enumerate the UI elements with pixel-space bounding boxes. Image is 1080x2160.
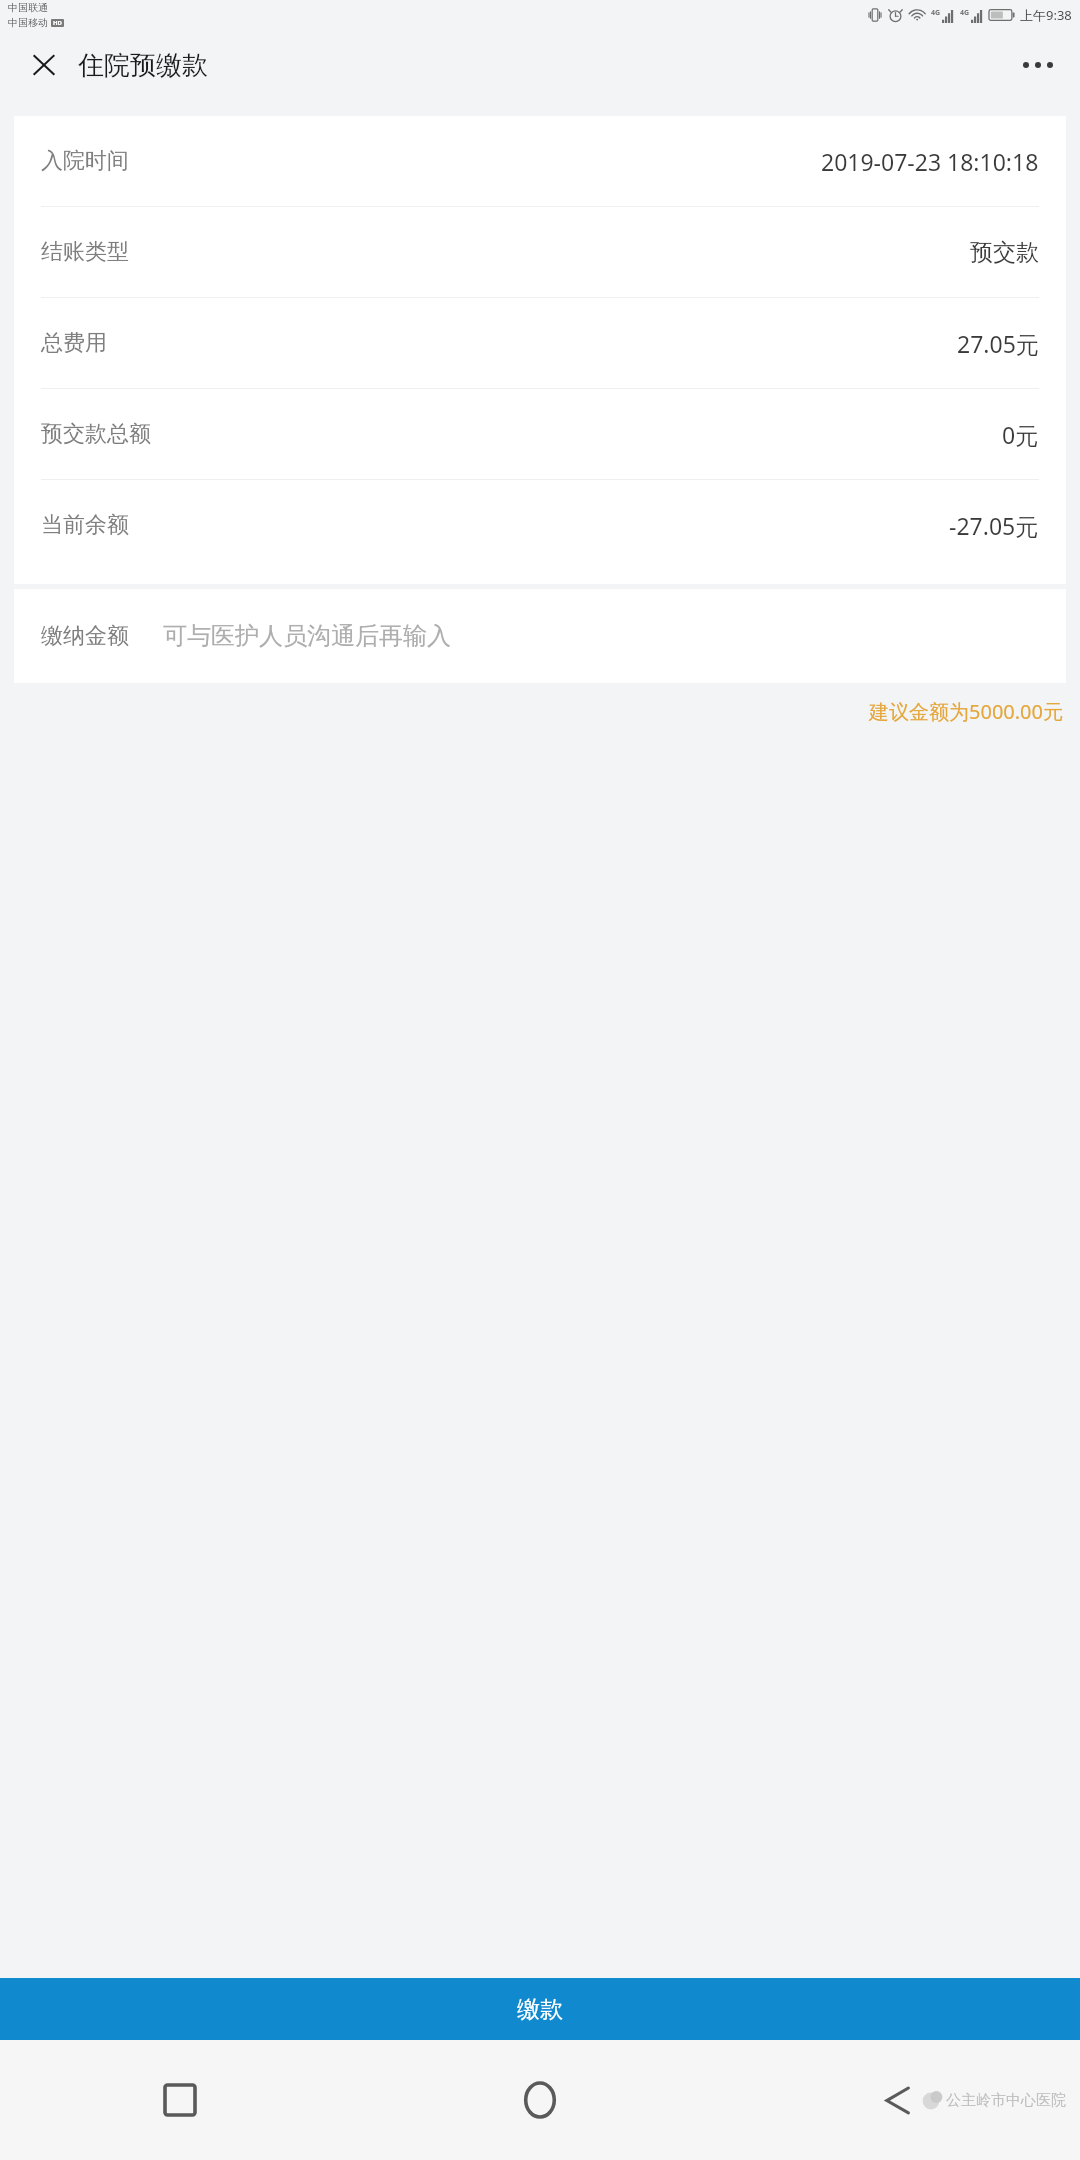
staticText: 预交款总额 [41,420,151,448]
staticText: 入院时间 [41,147,129,175]
staticText: 2019-07-23 18:10:18 [821,146,1039,177]
staticText: 缴纳金额 [41,622,129,650]
button[interactable]: Home [360,2040,720,2160]
staticText: 公主岭市中心医院 [946,2091,1066,2110]
button[interactable]: 缴款 [0,1978,1080,2040]
staticText: 建议金额为5000.00元 [0,698,1063,725]
staticText: 当前余额 [41,511,129,539]
button[interactable]: Close [24,45,64,85]
button[interactable]: 缴纳金额 [14,589,1066,683]
staticText: 可与医护人员沟通后再输入 [163,621,451,651]
staticText: HD [53,19,62,27]
staticText: 4G [931,8,941,18]
staticText: -27.05元 [949,510,1039,541]
button[interactable]: Recent apps [0,2040,360,2160]
staticText: 预交款 [970,238,1039,267]
staticText: 0元 [1002,419,1039,450]
staticText: 上午9:38 [1020,6,1072,24]
staticText: 中国移动 [8,16,48,29]
staticText: 结账类型 [41,238,129,266]
staticText: 中国联通 [8,1,48,14]
staticText: 总费用 [41,329,107,357]
button[interactable]: Back [720,2040,1080,2160]
staticText: 27.05元 [957,328,1039,359]
staticText: 4G [960,8,970,18]
staticText: 住院预缴款 [78,49,208,82]
button[interactable]: More options [1014,41,1062,89]
staticText: 缴款 [517,1995,563,2024]
